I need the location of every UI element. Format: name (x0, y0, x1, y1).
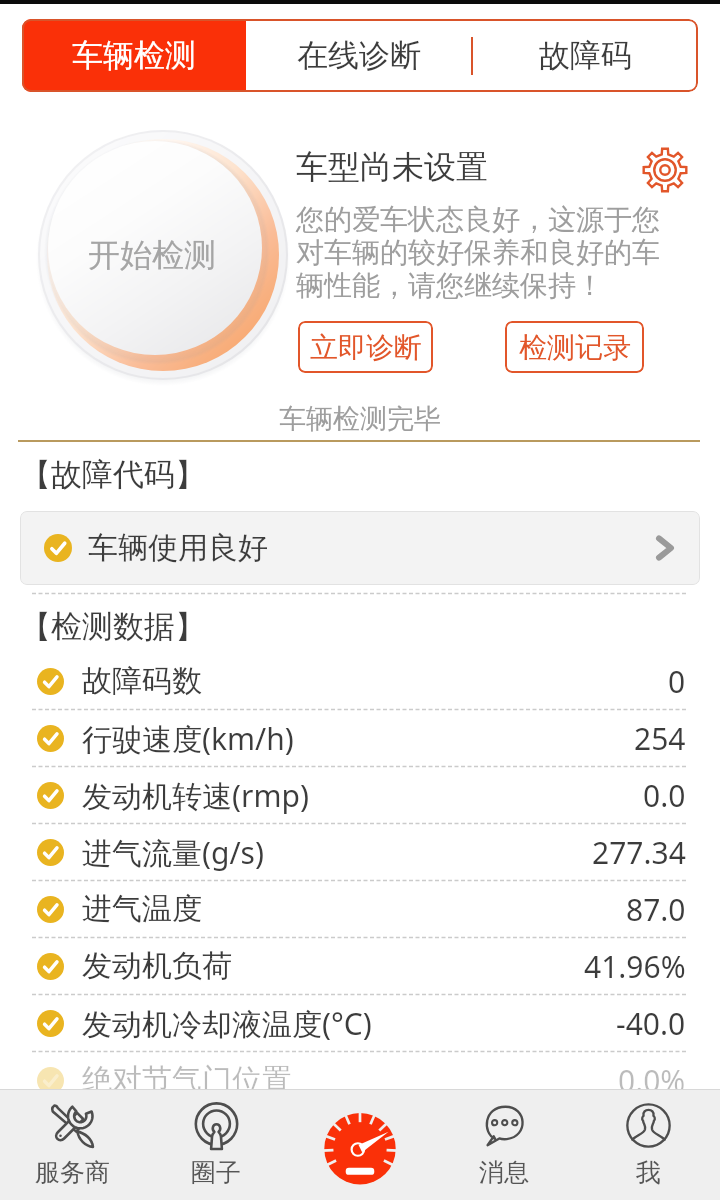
button[interactable]: 我 (576, 1089, 720, 1200)
staticText: 服务商 (35, 1157, 110, 1188)
staticText: 0 (668, 661, 686, 702)
button[interactable]: 绝对节气门位置 (0, 1052, 720, 1108)
staticText: 立即诊断 (310, 330, 422, 365)
staticText: 发动机负荷 (82, 947, 584, 985)
staticText: 圈子 (191, 1157, 241, 1188)
staticText: 87.0 (626, 889, 686, 930)
button[interactable]: 圈子 (144, 1089, 288, 1200)
button[interactable]: 检测记录 (505, 321, 644, 373)
staticText: 车辆检测完毕 (0, 402, 720, 436)
staticText: 在线诊断 (297, 36, 421, 75)
staticText: 行驶速度(km/h) (82, 718, 634, 759)
button[interactable]: 立即诊断 (298, 321, 433, 373)
staticText: 故障码 (539, 36, 632, 75)
button[interactable]: 车辆使用良好 (20, 511, 700, 585)
staticText: 开始检测 (88, 235, 216, 275)
button[interactable]: 消息 (432, 1089, 576, 1200)
staticText: 发动机冷却液温度(°C) (82, 1003, 616, 1044)
staticText: 0.0% (618, 1060, 686, 1101)
button[interactable]: 进气流量(g/s) (0, 824, 720, 880)
button[interactable]: 发动机转速(rmp) (0, 767, 720, 823)
button[interactable]: 在线诊断 (246, 19, 471, 92)
staticText: 您的爱车状态良好，这源于您对车辆的较好保养和良好的车辆性能，请您继续保持！ (296, 202, 670, 303)
staticText: 进气温度 (82, 890, 626, 928)
button[interactable]: 发动机负荷 (0, 938, 720, 994)
button[interactable]: 设置 (640, 145, 690, 195)
button[interactable]: 进气温度 (0, 881, 720, 937)
staticText: 绝对节气门位置 (82, 1061, 618, 1099)
button[interactable]: 行驶速度(km/h) (0, 710, 720, 766)
button[interactable]: 故障码数 (0, 653, 720, 709)
staticText: 发动机转速(rmp) (82, 775, 643, 816)
staticText: 车辆使用良好 (88, 529, 650, 567)
staticText: 254 (634, 718, 686, 759)
button[interactable]: 车辆检测 (22, 19, 246, 92)
staticText: 车辆检测 (72, 36, 196, 75)
staticText: 我 (636, 1157, 661, 1188)
button[interactable]: 发动机冷却液温度(°C) (0, 995, 720, 1051)
button[interactable]: 检测 (288, 1089, 432, 1200)
staticText: 消息 (479, 1157, 529, 1188)
button[interactable]: 服务商 (0, 1089, 144, 1200)
staticText: 检测记录 (519, 330, 631, 365)
button[interactable]: 故障码 (473, 19, 698, 92)
staticText: 277.34 (592, 832, 686, 873)
staticText: 0.0 (643, 775, 686, 816)
staticText: 【检测数据】 (20, 607, 206, 646)
staticText: 进气流量(g/s) (82, 832, 592, 873)
staticText: -40.0 (616, 1003, 686, 1044)
staticText: 故障码数 (82, 662, 668, 700)
staticText: 车型尚未设置 (296, 147, 488, 187)
staticText: 【故障代码】 (20, 455, 206, 494)
staticText: 41.96% (584, 946, 686, 987)
